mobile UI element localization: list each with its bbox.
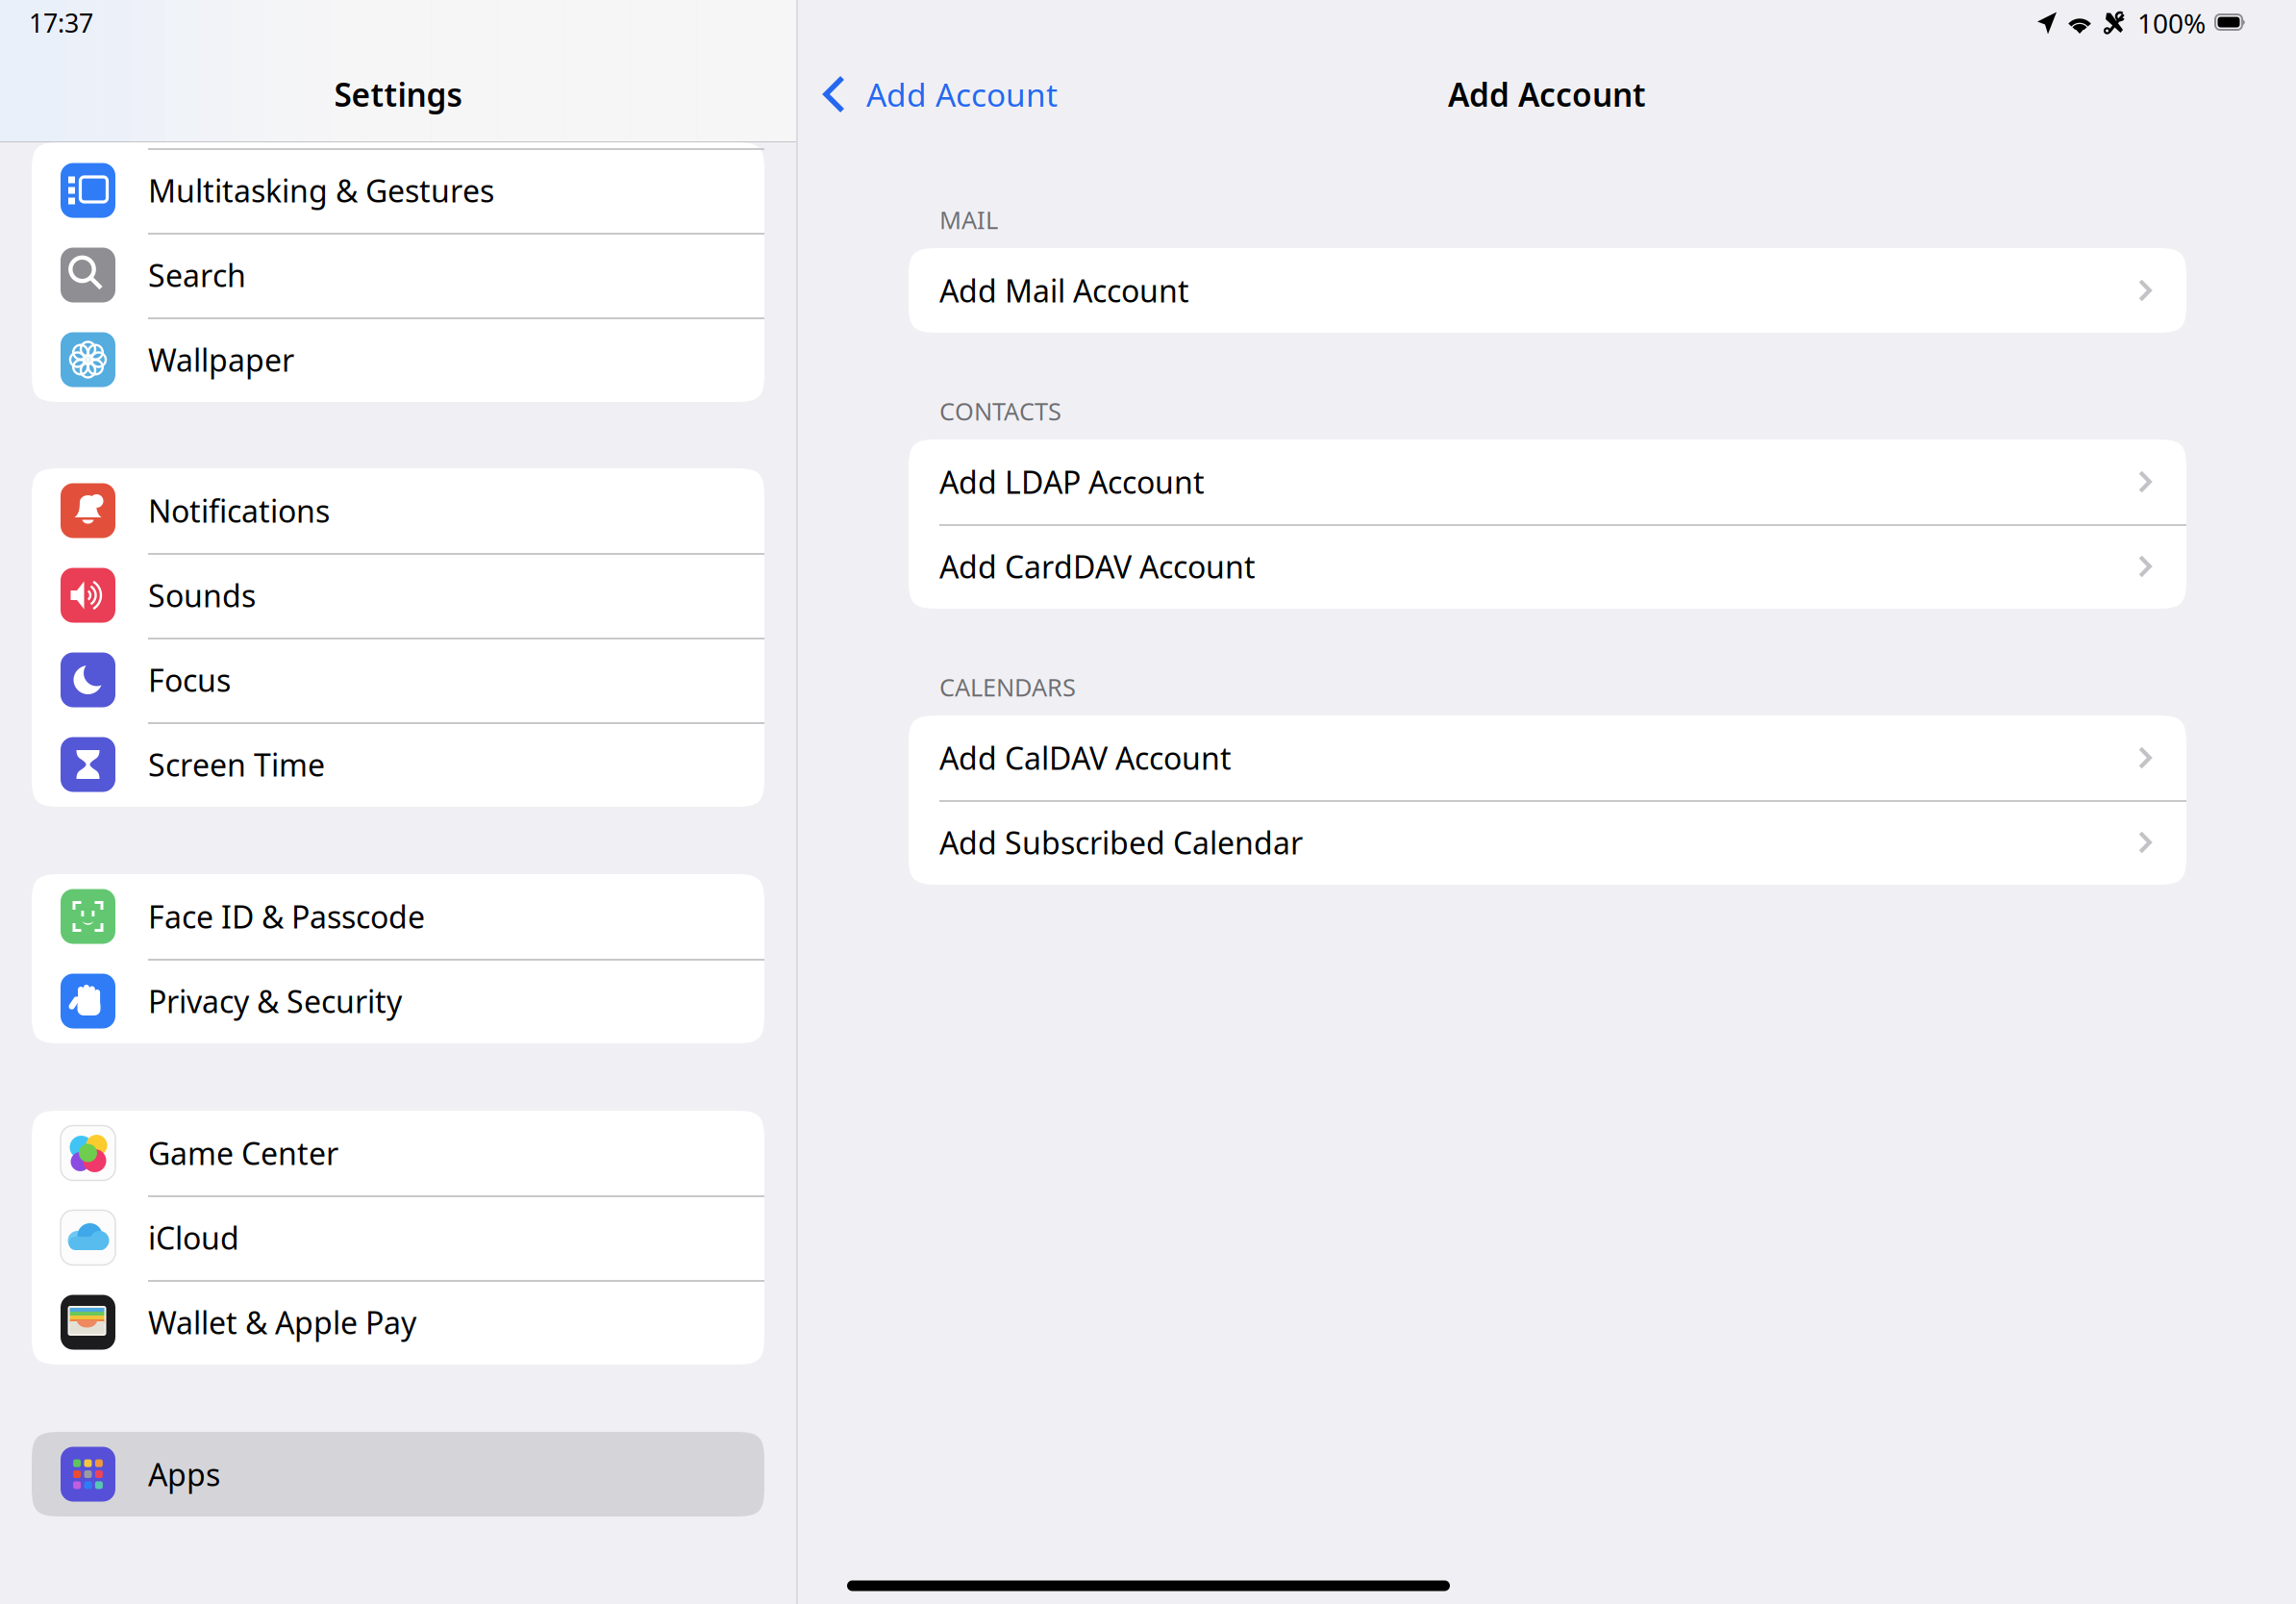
- staticText: Search: [148, 255, 246, 296]
- staticText: Game Center: [148, 1133, 338, 1173]
- button[interactable]: Focus: [32, 638, 764, 722]
- staticText: CONTACTS: [939, 395, 1061, 427]
- button[interactable]: Notifications: [32, 468, 764, 553]
- staticText: Privacy & Security: [148, 981, 402, 1022]
- staticText: 17:37: [29, 6, 93, 40]
- button[interactable]: Multitasking & Gestures: [32, 148, 764, 233]
- button[interactable]: Privacy & Security: [32, 959, 764, 1043]
- staticText: iCloud: [148, 1217, 239, 1258]
- button[interactable]: Screen Time: [32, 722, 764, 807]
- staticText: Add Account: [1448, 73, 1646, 116]
- staticText: Sounds: [148, 575, 256, 616]
- staticText: Face ID & Passcode: [148, 896, 425, 937]
- button[interactable]: Search: [32, 233, 764, 317]
- button[interactable]: Add LDAP Account: [909, 439, 2186, 524]
- button[interactable]: Wallpaper: [32, 317, 764, 402]
- button[interactable]: Wallet & Apple Pay: [32, 1280, 764, 1365]
- button[interactable]: Add Subscribed Calendar: [909, 800, 2186, 885]
- button[interactable]: Add Account: [798, 64, 1058, 124]
- staticText: Add CardDAV Account: [939, 546, 1256, 587]
- staticText: Add LDAP Account: [939, 461, 1205, 502]
- staticText: Add Subscribed Calendar: [939, 822, 1303, 863]
- button[interactable]: iCloud: [32, 1195, 764, 1280]
- staticText: Apps: [148, 1454, 220, 1495]
- staticText: Notifications: [148, 490, 330, 531]
- staticText: Multitasking & Gestures: [148, 170, 494, 211]
- button[interactable]: Face ID & Passcode: [32, 874, 764, 959]
- staticText: 100%: [2137, 5, 2206, 41]
- staticText: Wallpaper: [148, 339, 294, 380]
- button[interactable]: Game Center: [32, 1111, 764, 1195]
- staticText: Add Mail Account: [939, 270, 1189, 311]
- staticText: Focus: [148, 659, 231, 700]
- button[interactable]: Apps: [32, 1432, 764, 1516]
- button[interactable]: Add CardDAV Account: [909, 524, 2186, 609]
- button[interactable]: Add Mail Account: [909, 248, 2186, 333]
- staticText: Settings: [334, 73, 462, 116]
- staticText: Add CalDAV Account: [939, 737, 1232, 778]
- staticText: Screen Time: [148, 744, 325, 785]
- staticText: Add Account: [866, 73, 1058, 116]
- staticText: CALENDARS: [939, 671, 1076, 703]
- staticText: Wallet & Apple Pay: [148, 1302, 416, 1343]
- button[interactable]: Sounds: [32, 553, 764, 638]
- staticText: MAIL: [939, 204, 998, 236]
- button[interactable]: Add CalDAV Account: [909, 715, 2186, 800]
